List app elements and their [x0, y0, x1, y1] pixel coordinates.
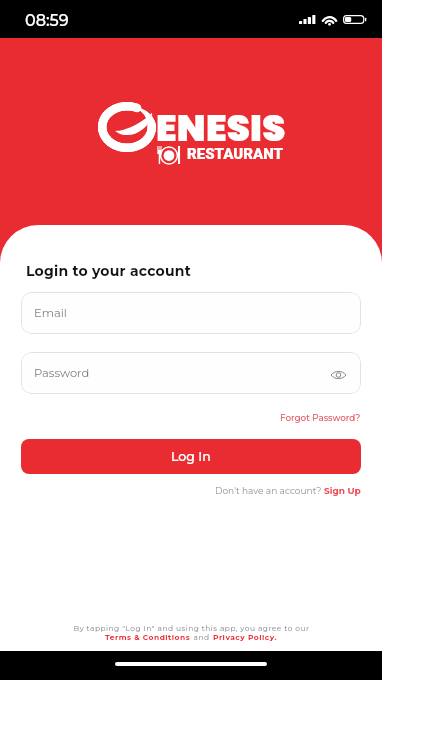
staticText: ENESIS	[156, 102, 286, 154]
staticText: Login to your account	[26, 262, 191, 279]
button[interactable]: Terms & Conditions	[105, 633, 191, 642]
button[interactable]: Show password	[328, 365, 348, 385]
staticText: Log In	[171, 449, 211, 464]
button[interactable]: Privacy Policy.	[213, 633, 277, 642]
staticText: By tapping "Log In" and using this app, …	[73, 624, 310, 633]
staticText: RESTAURANT	[187, 145, 283, 163]
other: Home indicator	[115, 662, 267, 666]
staticText: Password	[34, 366, 90, 380]
button[interactable]: Sign Up	[324, 485, 361, 496]
button[interactable]: Log In	[21, 439, 361, 474]
button[interactable]: Email	[21, 292, 361, 334]
staticText: Don't have an account?	[215, 485, 324, 496]
button[interactable]: Password	[21, 352, 361, 394]
staticText: 08:59	[25, 11, 69, 31]
staticText: and	[191, 633, 213, 642]
staticText: Email	[34, 306, 67, 320]
button[interactable]: Forgot Password?	[280, 412, 361, 423]
